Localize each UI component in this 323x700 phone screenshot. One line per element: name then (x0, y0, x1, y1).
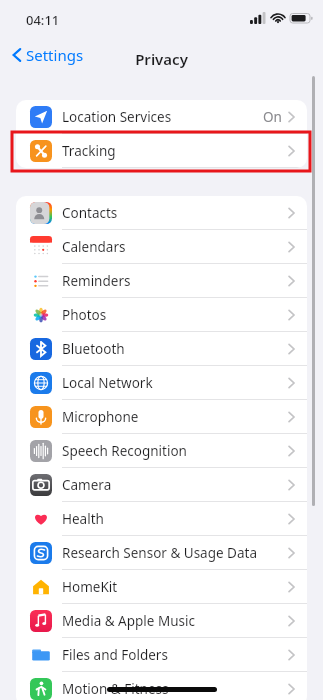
button[interactable]: Files and Folders (16, 638, 307, 672)
staticText: Media & Apple Music (62, 612, 195, 630)
button[interactable]: Camera (16, 468, 307, 502)
button[interactable]: Speech Recognition (16, 434, 307, 468)
staticText: Tracking (62, 142, 116, 160)
staticText: Reminders (62, 272, 131, 290)
button[interactable]: Motion & Fitness (16, 672, 307, 700)
staticText: Local Network (62, 374, 153, 392)
staticText: Privacy (135, 49, 188, 69)
button[interactable]: Local Network (16, 366, 307, 400)
button[interactable]: Location Services (16, 100, 307, 134)
staticText: Settings (26, 45, 84, 65)
button[interactable]: Microphone (16, 400, 307, 434)
staticText: Files and Folders (62, 646, 168, 664)
button[interactable]: Contacts (16, 196, 307, 230)
staticText: HomeKit (62, 578, 118, 596)
staticText: Location Services (62, 108, 172, 126)
staticText: Speech Recognition (62, 442, 187, 460)
staticText: On (263, 108, 282, 126)
staticText: Bluetooth (62, 340, 125, 358)
staticText: Contacts (62, 204, 118, 222)
button[interactable]: Media & Apple Music (16, 604, 307, 638)
button[interactable]: Tracking (16, 134, 307, 168)
button[interactable]: Health (16, 502, 307, 536)
button[interactable]: Calendars (16, 230, 307, 264)
button[interactable]: Research Sensor & Usage Data (16, 536, 307, 570)
staticText: Photos (62, 306, 107, 324)
staticText: Motion & Fitness (62, 680, 169, 698)
staticText: Research Sensor & Usage Data (62, 544, 257, 562)
staticText: 04:11 (26, 11, 60, 29)
staticText: Health (62, 510, 104, 528)
button[interactable]: HomeKit (16, 570, 307, 604)
button[interactable]: Reminders (16, 264, 307, 298)
staticText: Microphone (62, 408, 139, 426)
button[interactable]: Settings (8, 42, 88, 68)
staticText: Camera (62, 476, 112, 494)
button[interactable]: Bluetooth (16, 332, 307, 366)
button[interactable]: Photos (16, 298, 307, 332)
staticText: Calendars (62, 238, 126, 256)
